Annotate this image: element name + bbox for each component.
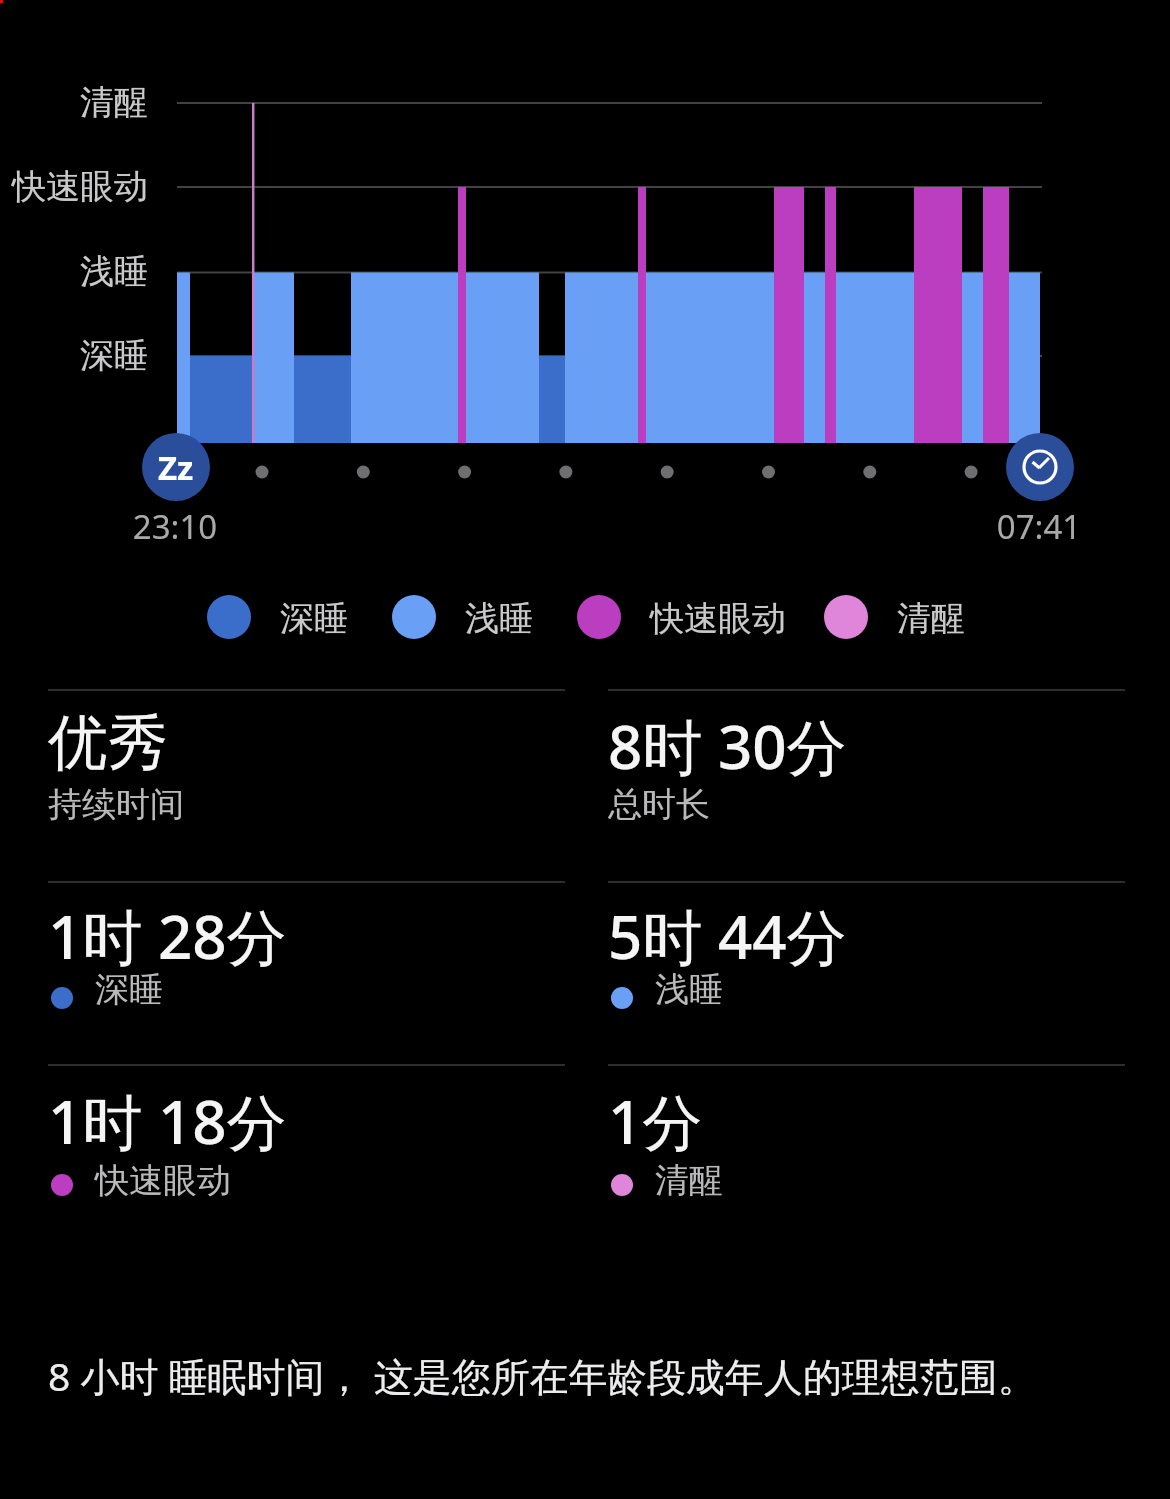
staticText: 持续时间 xyxy=(48,783,184,826)
staticText: 优秀 xyxy=(48,705,168,781)
button[interactable]: 优秀 xyxy=(48,700,565,860)
staticText: 清醒 xyxy=(897,597,965,640)
staticText: 清醒 xyxy=(655,1159,723,1202)
staticText: 5时 44分 xyxy=(608,895,847,977)
staticText: 1时 18分 xyxy=(48,1080,287,1162)
button[interactable]: Zz xyxy=(142,433,210,501)
staticText: 清醒 xyxy=(0,81,148,124)
button[interactable]: 1时 18分 xyxy=(48,1078,565,1233)
staticText: 1时 28分 xyxy=(48,895,287,977)
button[interactable]: 8时 30分 xyxy=(608,700,1125,860)
staticText: 8时 30分 xyxy=(608,705,847,787)
button[interactable]: 1时 28分 xyxy=(48,890,565,1045)
button[interactable] xyxy=(1006,433,1074,501)
staticText: 总时长 xyxy=(608,783,710,826)
staticText: 浅睡 xyxy=(0,250,148,293)
staticText: Zz xyxy=(158,445,194,490)
staticText: 8 小时 睡眠时间， 这是您所在年龄段成年人的理想范围。 xyxy=(48,1349,1037,1402)
staticText: 23:10 xyxy=(115,504,235,549)
staticText: 深睡 xyxy=(280,597,348,640)
staticText: 浅睡 xyxy=(655,968,723,1011)
button[interactable]: 1分 xyxy=(608,1078,1125,1233)
staticText: 快速眼动 xyxy=(95,1159,231,1202)
staticText: 快速眼动 xyxy=(0,165,148,208)
staticText: 1分 xyxy=(608,1080,703,1162)
staticText: 快速眼动 xyxy=(650,597,786,640)
button[interactable]: 5时 44分 xyxy=(608,890,1125,1045)
staticText: 浅睡 xyxy=(465,597,533,640)
staticText: 深睡 xyxy=(0,334,148,377)
staticText: 深睡 xyxy=(95,968,163,1011)
staticText: 07:41 xyxy=(979,504,1099,549)
